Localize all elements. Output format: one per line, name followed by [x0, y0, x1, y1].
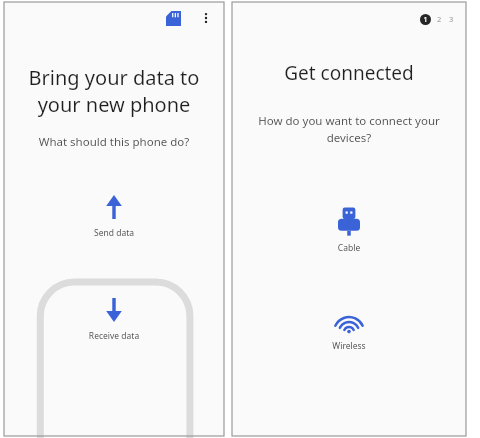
- button[interactable]: SD card: [160, 5, 186, 31]
- staticText: Wireless: [232, 340, 466, 352]
- staticText: 3: [449, 14, 454, 24]
- staticText: Get connected: [232, 60, 466, 86]
- staticText: 2: [437, 14, 442, 24]
- staticText: Send data: [4, 227, 224, 239]
- button[interactable]: More options: [194, 6, 218, 30]
- staticText: Receive data: [4, 330, 224, 342]
- button[interactable]: Send data: [4, 192, 224, 239]
- staticText: Bring your data to your new phone: [4, 64, 224, 118]
- staticText: Cable: [232, 242, 466, 254]
- staticText: What should this phone do?: [4, 134, 224, 150]
- staticText: 1: [423, 15, 428, 25]
- button[interactable]: Cable: [232, 207, 466, 254]
- button[interactable]: Wireless: [232, 310, 466, 352]
- button[interactable]: Receive data: [4, 295, 224, 342]
- staticText: How do you want to connect your devices?: [252, 113, 446, 145]
